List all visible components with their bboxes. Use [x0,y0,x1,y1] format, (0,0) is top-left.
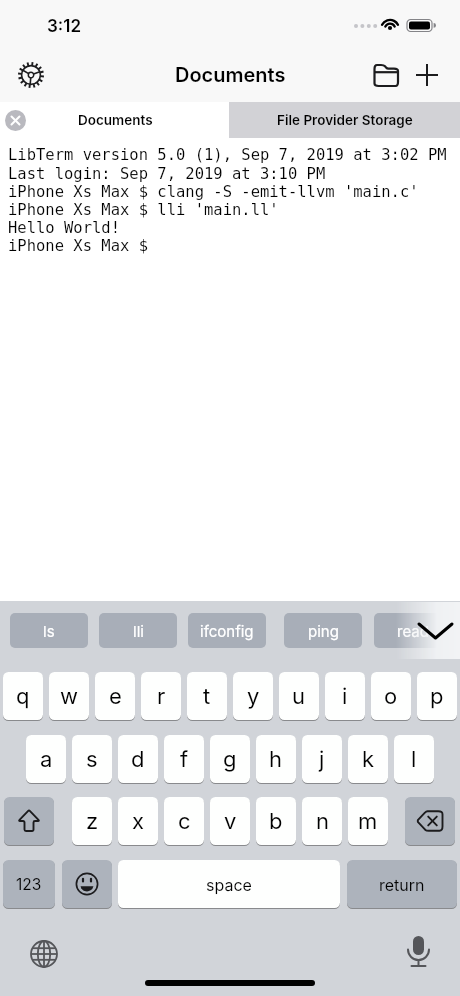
staticText: lli [133,622,144,640]
staticText: j [319,746,325,773]
staticText: g [223,746,237,773]
button[interactable]: k [348,735,388,784]
staticText: s [86,746,98,773]
staticText: o [384,683,398,710]
staticText: ping [308,622,339,640]
staticText: return [379,875,425,894]
staticText: f [180,746,189,773]
staticText: 123 [16,875,42,894]
staticText: ls [43,622,55,640]
staticText: space [206,875,252,894]
button[interactable] [62,860,112,909]
staticText: t [203,683,211,710]
staticText: File Provider Storage [277,112,413,128]
staticText: l [411,746,417,773]
button[interactable] [402,932,436,972]
staticText: w [60,683,79,710]
button[interactable]: z [72,797,112,846]
staticText: n [316,808,329,835]
button[interactable]: space [118,860,340,909]
button[interactable]: lli [99,613,177,648]
button[interactable]: c [164,797,204,846]
button[interactable]: m [348,797,388,846]
staticText: a [40,746,53,773]
staticText: u [292,683,306,710]
staticText: d [131,746,145,773]
button[interactable] [0,102,229,138]
button[interactable]: n [302,797,342,846]
staticText: z [86,808,99,835]
staticText: read [397,622,429,640]
button[interactable]: ls [10,613,88,648]
staticText: i [342,683,348,710]
button[interactable]: ifconfig [188,613,266,648]
staticText: p [430,683,444,710]
button[interactable]: j [302,735,342,784]
staticText: b [269,808,283,835]
button[interactable]: q [3,672,43,721]
button[interactable]: b [256,797,296,846]
staticText: Documents [78,112,153,128]
staticText: LibTerm version 5.0 (1), Sep 7, 2019 at … [8,146,447,254]
button[interactable]: v [210,797,250,846]
button[interactable] [4,797,54,846]
button[interactable]: read [374,613,452,648]
button[interactable]: g [210,735,250,784]
button[interactable]: ping [284,613,362,648]
staticText: m [358,808,378,835]
button[interactable] [405,797,455,846]
staticText: c [178,808,191,835]
button[interactable]: r [141,672,181,721]
button[interactable]: h [256,735,296,784]
button[interactable]: i [325,672,365,721]
button[interactable]: 123 [3,860,55,909]
button[interactable]: l [394,735,434,784]
button[interactable]: f [164,735,204,784]
staticText: e [109,683,122,710]
staticText: q [16,683,30,710]
button[interactable]: p [417,672,457,721]
staticText: Documents [175,63,286,87]
staticText: h [269,746,283,773]
button[interactable] [413,61,441,89]
button[interactable]: e [95,672,135,721]
button[interactable] [28,938,60,970]
button[interactable]: x [118,797,158,846]
button[interactable]: s [72,735,112,784]
button[interactable]: w [49,672,89,721]
button[interactable] [5,110,26,131]
button[interactable] [14,58,48,92]
button[interactable] [412,615,458,647]
staticText: r [157,683,166,710]
button[interactable]: t [187,672,227,721]
button[interactable]: u [279,672,319,721]
button[interactable]: y [233,672,273,721]
staticText: k [362,746,375,773]
button[interactable] [369,60,403,92]
staticText: ifconfig [200,622,254,640]
button[interactable]: d [118,735,158,784]
button[interactable]: return [347,860,457,909]
staticText: y [247,683,260,710]
button[interactable] [229,102,460,138]
staticText: v [224,808,237,835]
staticText: 3:12 [47,16,82,37]
button[interactable]: o [371,672,411,721]
button[interactable]: a [26,735,66,784]
staticText: x [132,808,145,835]
